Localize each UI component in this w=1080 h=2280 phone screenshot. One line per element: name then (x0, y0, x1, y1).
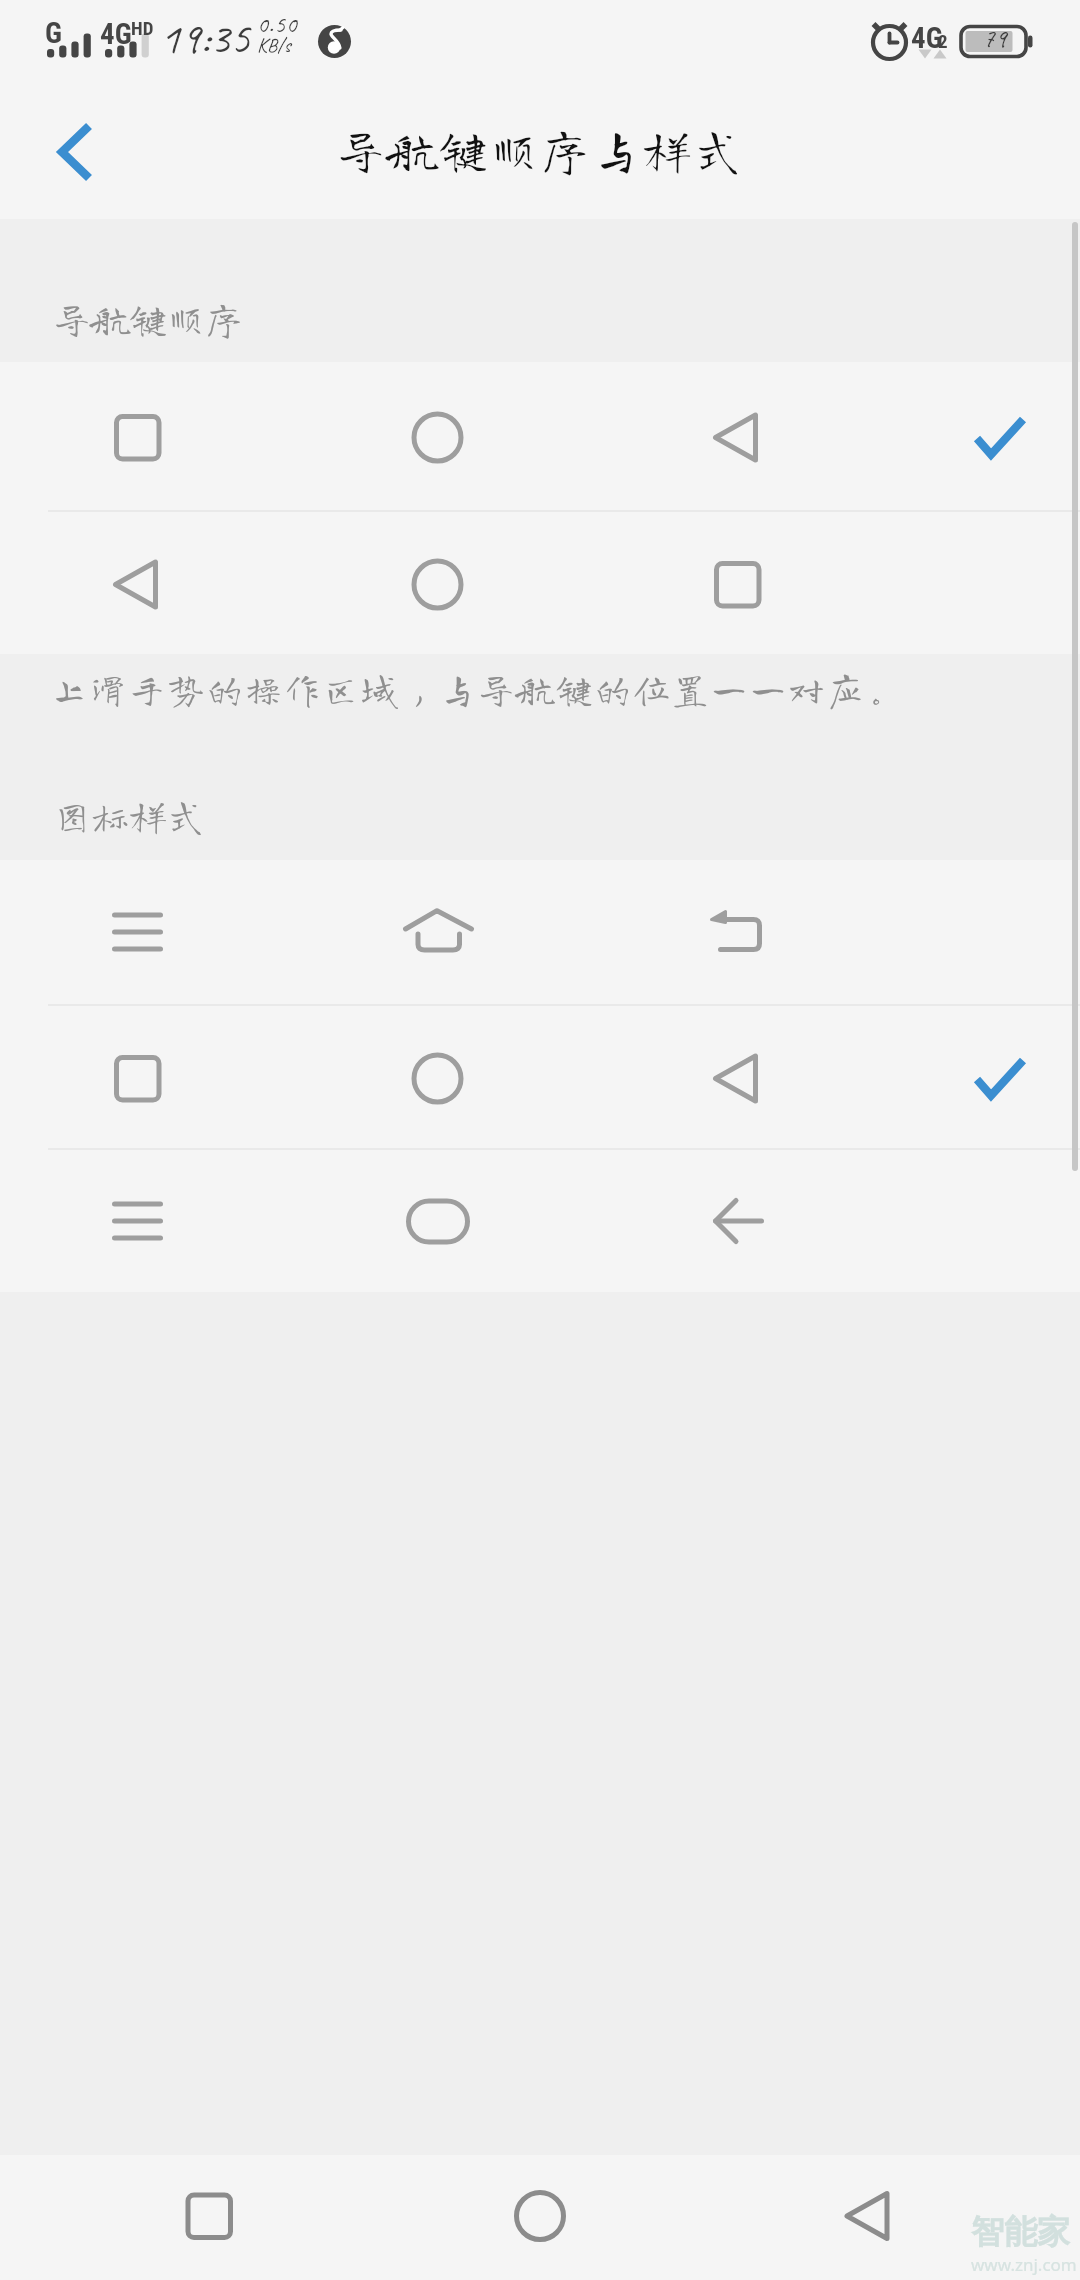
button[interactable] (0, 1150, 1080, 1292)
staticText: 智能家 (971, 2211, 1070, 2253)
staticText: www.znj.com (971, 2253, 1077, 2276)
staticText: 19:35 (160, 11, 251, 66)
button[interactable]: Back (20, 97, 126, 203)
button[interactable]: Home (470, 2155, 610, 2280)
staticText: 0.50 (257, 9, 298, 39)
staticText: 2 (938, 30, 948, 52)
staticText: 79 (983, 22, 1007, 55)
staticText: 上滑手势的操作区域，与导航键的位置一一对应。 (51, 670, 905, 707)
button[interactable]: Back (799, 2155, 939, 2280)
staticText: 图标样式 (53, 797, 206, 835)
button[interactable] (0, 1006, 1080, 1148)
staticText: 导航键顺序与样式 (336, 125, 745, 174)
button[interactable] (0, 512, 1080, 654)
staticText: G (45, 16, 62, 50)
staticText: 导航键顺序 (53, 300, 244, 338)
staticText: KB/s (257, 33, 291, 58)
button[interactable] (0, 362, 1080, 510)
staticText: 4G (911, 21, 943, 55)
staticText: 4G (100, 17, 132, 51)
staticText: HD (131, 17, 154, 39)
button[interactable]: Recents (139, 2155, 279, 2280)
button[interactable] (0, 860, 1080, 1004)
